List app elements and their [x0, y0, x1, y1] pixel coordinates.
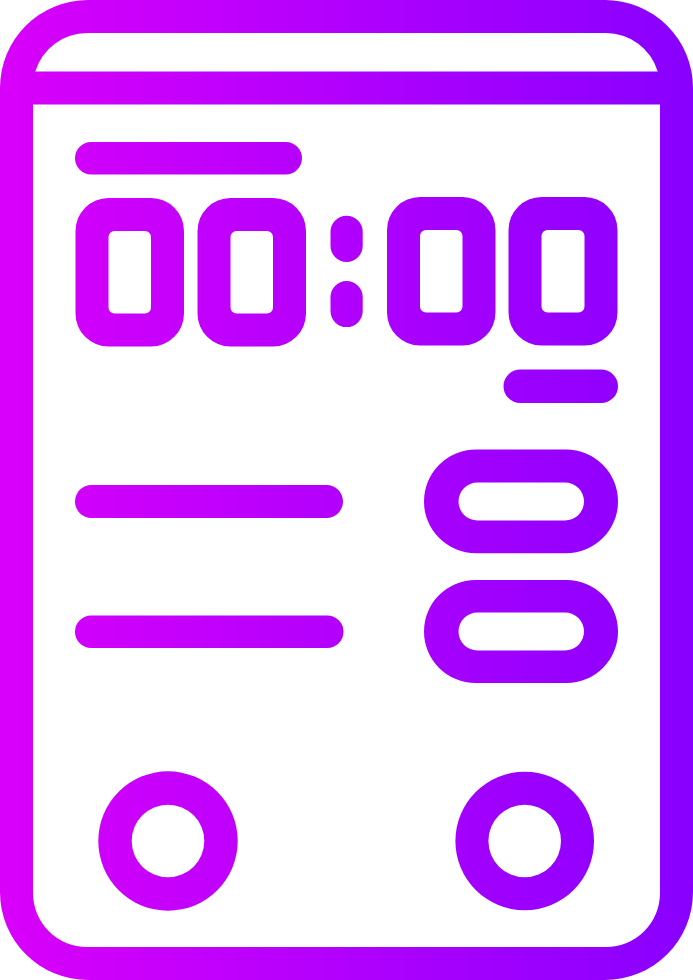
button[interactable]: Scoreboard timer	[0, 0, 693, 980]
